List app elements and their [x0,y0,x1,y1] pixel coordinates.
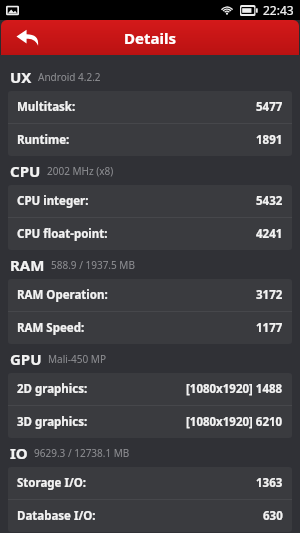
staticText: CPU float-point: [17,226,108,242]
staticText: [1080x1920] 1488 [186,381,283,397]
staticText: 22:43 [263,2,294,18]
staticText: CPU [10,161,41,181]
staticText: 5477 [256,99,283,115]
staticText: 2D graphics: [17,381,88,397]
staticText: Android 4.2.2 [38,70,101,84]
staticText: 1177 [256,320,283,336]
button[interactable]: Runtime: [8,124,292,156]
staticText: UX [10,67,32,87]
button[interactable]: Multitask: [8,91,292,123]
staticText: 3D graphics: [17,414,88,430]
staticText: Database I/O: [17,508,96,524]
staticText: IO [10,443,28,463]
staticText: 630 [263,508,283,524]
button[interactable]: CPU integer: [8,185,292,217]
staticText: GPU [10,349,42,369]
staticText: [1080x1920] 6210 [186,414,283,430]
staticText: 5432 [256,193,283,209]
staticText: Details [124,28,176,48]
staticText: RAM Speed: [17,320,85,336]
staticText: 4241 [256,226,283,242]
staticText: RAM [10,255,45,275]
button[interactable]: Back [1,20,53,55]
button[interactable]: CPU float-point: [8,218,292,250]
staticText: 3172 [256,287,283,303]
staticText: RAM Operation: [17,287,108,303]
staticText: 9629.3 / 12738.1 MB [34,446,130,460]
staticText: Runtime: [17,132,70,148]
button[interactable]: Database I/O: [8,500,292,532]
button[interactable]: 3D graphics: [8,406,292,438]
button[interactable]: Storage I/O: [8,467,292,499]
staticText: Mali-450 MP [48,352,106,366]
button[interactable]: 2D graphics: [8,373,292,405]
button[interactable]: RAM Operation: [8,279,292,311]
staticText: 1891 [256,132,283,148]
staticText: 2002 MHz (x8) [47,164,114,178]
staticText: CPU integer: [17,193,89,209]
staticText: Storage I/O: [17,475,87,491]
button[interactable]: RAM Speed: [8,312,292,344]
staticText: 588.9 / 1937.5 MB [51,258,135,272]
staticText: 1363 [256,475,283,491]
staticText: Multitask: [17,99,76,115]
